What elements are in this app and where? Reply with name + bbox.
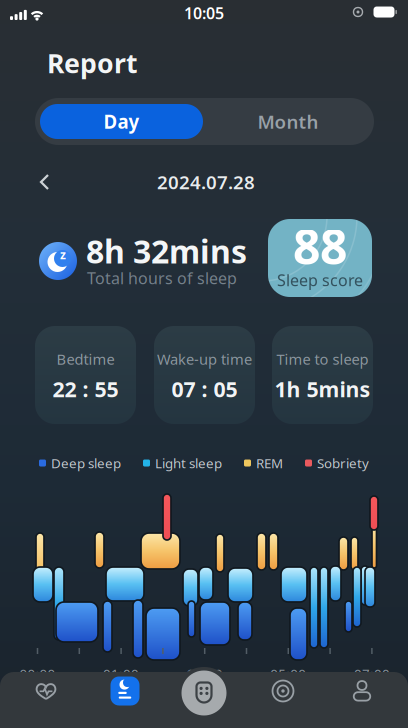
button[interactable] [261, 671, 305, 711]
staticText: Total hours of sleep [87, 267, 237, 289]
button[interactable] [103, 671, 147, 711]
button[interactable] [340, 671, 384, 711]
staticText: 88 [293, 214, 347, 278]
staticText: Bedtime [56, 349, 114, 369]
staticText: 10:05 [184, 2, 224, 24]
staticText: 2024.07.28 [157, 170, 255, 194]
staticText: Time to sleep [276, 349, 368, 369]
staticText: 8h 32mins [86, 230, 247, 272]
staticText: REM [256, 454, 283, 472]
staticText: 05:00 [270, 665, 306, 682]
button[interactable] [24, 671, 68, 711]
staticText: 07:00 [354, 665, 390, 682]
staticText: Sleep score [277, 269, 363, 291]
staticText: Day [103, 109, 139, 134]
staticText: z [60, 246, 66, 262]
staticText: 1h 5mins [274, 375, 370, 403]
button[interactable] [29, 164, 65, 200]
staticText: 07 : 05 [171, 375, 237, 403]
staticText: Report [47, 45, 138, 81]
staticText: Sobriety [317, 454, 369, 472]
staticText: Deep sleep [51, 454, 121, 472]
button[interactable]: Day [40, 104, 203, 139]
staticText: Month [257, 109, 318, 134]
staticText: Light sleep [155, 454, 222, 472]
staticText: Wake-up time [157, 349, 252, 369]
staticText: 01:00 [103, 665, 139, 682]
staticText: 22 : 55 [52, 375, 118, 403]
button[interactable]: Month [208, 104, 368, 139]
staticText: 00:00 [19, 665, 55, 682]
button[interactable] [181, 670, 226, 715]
staticText: 03:00 [187, 665, 223, 682]
